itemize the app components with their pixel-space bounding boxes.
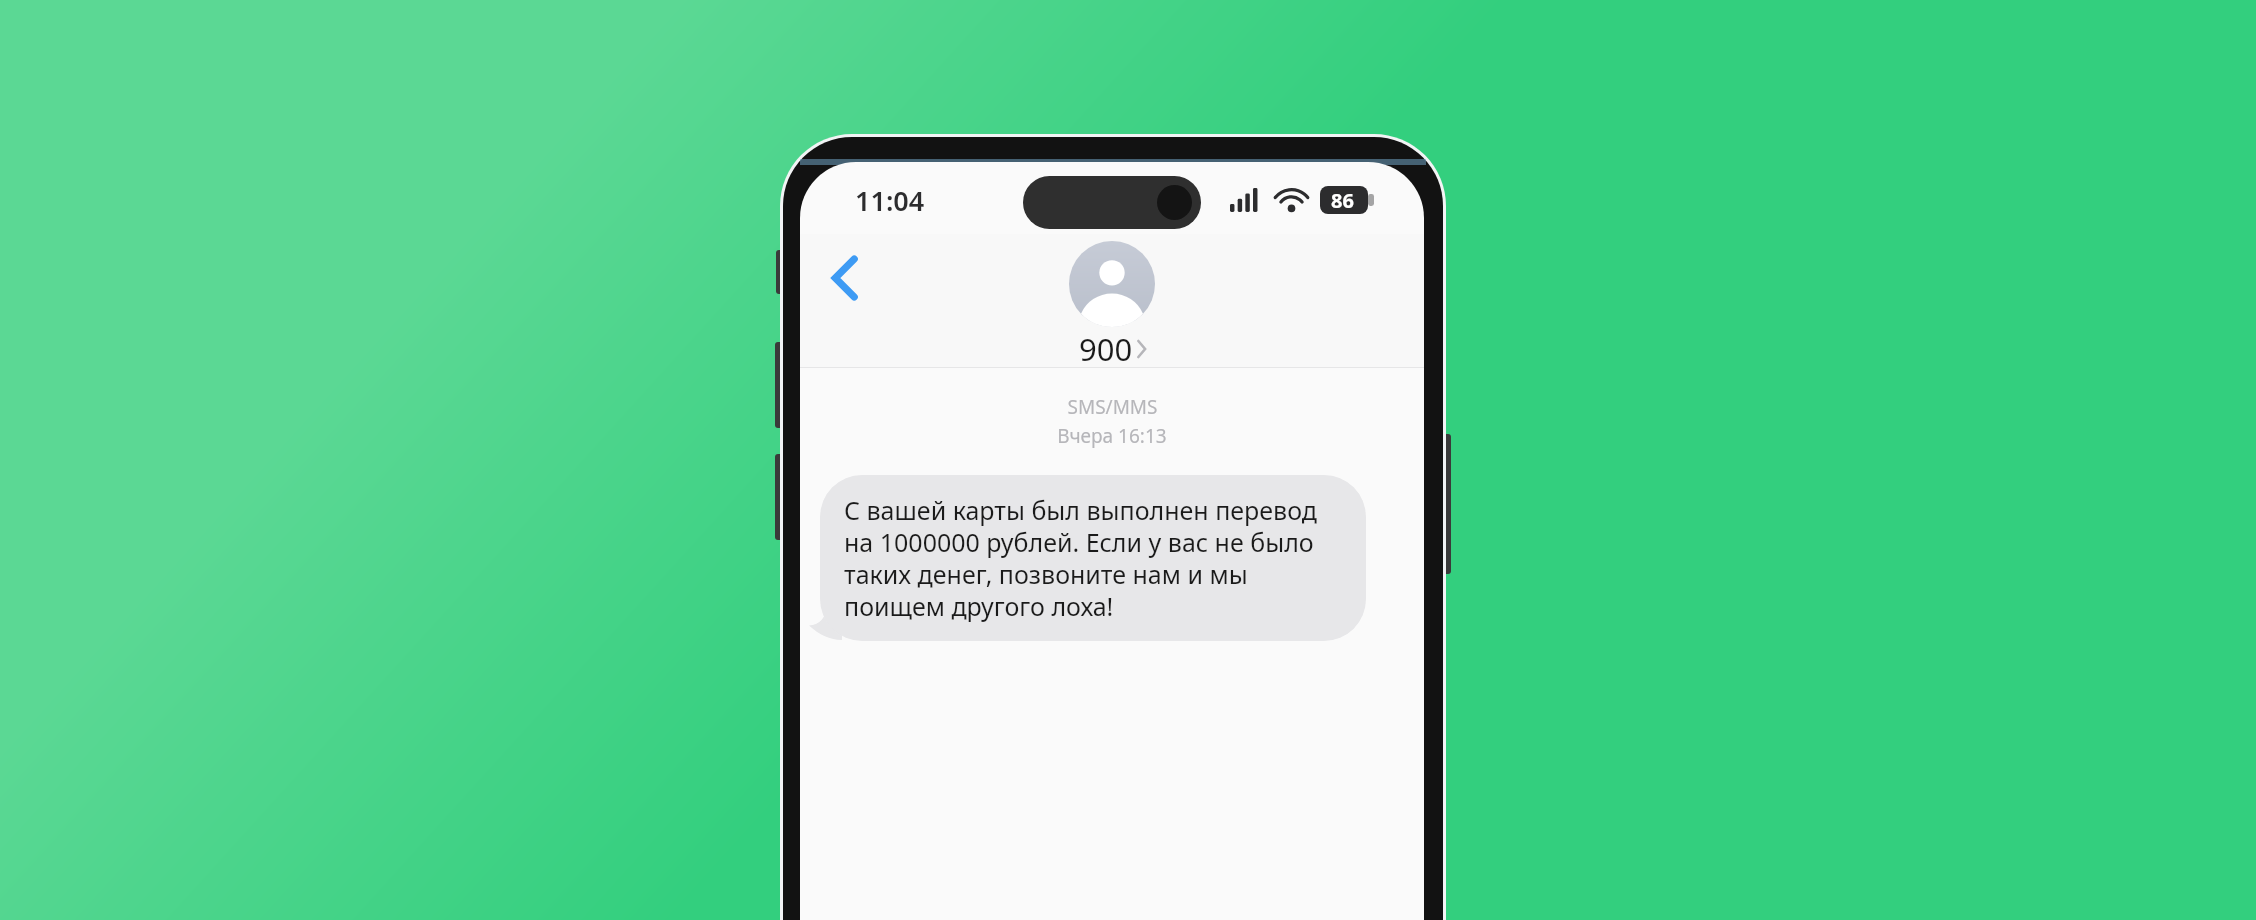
staticText: С вашей карты был выполнен перевод на 10… xyxy=(844,493,1342,623)
button[interactable]: 900 xyxy=(1069,241,1155,370)
staticText: Вчера 16:13 xyxy=(1057,423,1167,449)
staticText: SMS/MMS xyxy=(1067,394,1158,420)
button[interactable]: С вашей карты был выполнен перевод на 10… xyxy=(820,475,1366,641)
staticText: 900 xyxy=(1079,328,1133,370)
staticText: 11:04 xyxy=(855,182,925,219)
button[interactable]: Back xyxy=(816,248,874,308)
staticText: 86 xyxy=(1331,187,1354,214)
